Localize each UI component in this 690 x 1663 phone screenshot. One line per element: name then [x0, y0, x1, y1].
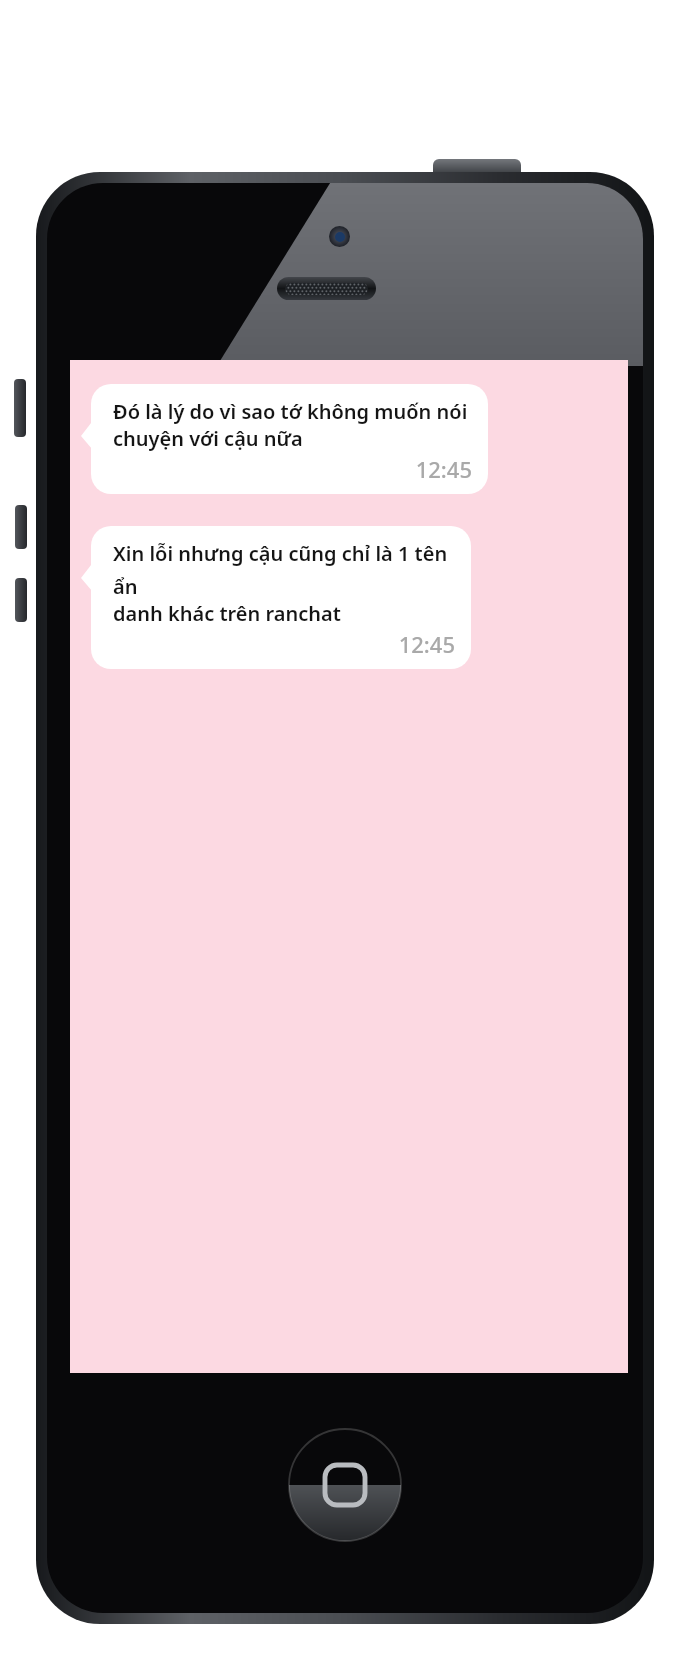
staticText: Đó là lý do vì sao tớ không muốn nói	[113, 398, 468, 425]
button[interactable]: Home	[287, 1427, 403, 1543]
staticText: 12:45	[113, 454, 472, 484]
staticText: Xin lỗi nhưng cậu cũng chỉ là 1 tên ẩn	[113, 540, 455, 600]
staticText: 12:45	[113, 629, 455, 659]
button[interactable]: Xin lỗi nhưng cậu cũng chỉ là 1 tên ẩn	[70, 526, 628, 669]
staticText: chuyện với cậu nữa	[113, 425, 303, 452]
button[interactable]: Đó là lý do vì sao tớ không muốn nói	[70, 384, 628, 494]
staticText: danh khác trên ranchat	[113, 600, 341, 627]
